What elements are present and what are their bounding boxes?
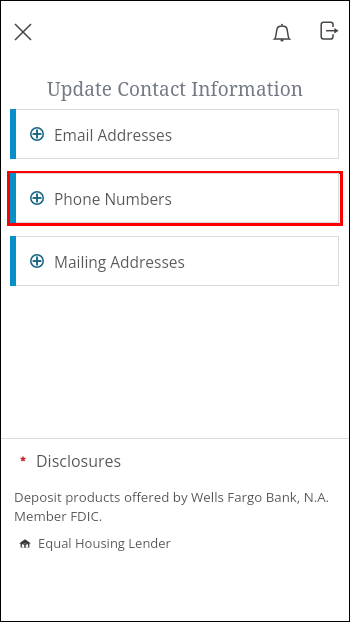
staticText: Update Contact Information xyxy=(47,76,304,102)
button[interactable]: Phone Numbers xyxy=(10,173,339,223)
staticText: Equal Housing Lender xyxy=(38,534,171,552)
button[interactable]: Sign off xyxy=(316,16,345,45)
staticText: Email Addresses xyxy=(54,124,173,145)
staticText: Phone Numbers xyxy=(54,188,172,209)
button[interactable]: Email Addresses xyxy=(10,109,339,159)
staticText: Disclosures xyxy=(36,450,122,472)
button[interactable]: Mailing Addresses xyxy=(10,236,339,286)
staticText: Mailing Addresses xyxy=(54,251,185,272)
staticText: Deposit products offered by Wells Fargo … xyxy=(14,488,330,525)
button[interactable]: Close xyxy=(8,17,37,46)
button[interactable]: Notifications xyxy=(268,16,297,45)
